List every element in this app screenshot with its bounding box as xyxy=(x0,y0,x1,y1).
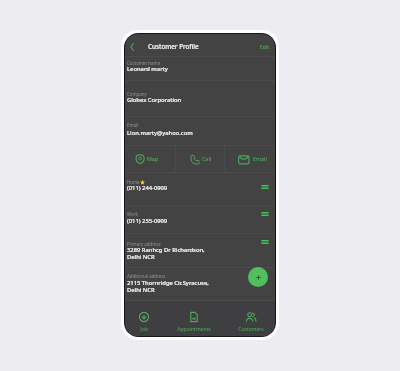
staticText: Additional address xyxy=(127,273,166,279)
staticText: Work xyxy=(127,211,138,217)
button[interactable]: Customers xyxy=(233,304,269,332)
staticText: (011) 244-0909 xyxy=(127,184,168,192)
staticText: Company xyxy=(127,91,147,97)
staticText: Customer name xyxy=(127,60,161,66)
staticText: 2115 Thornridge Cir.Syracuse, xyxy=(127,279,209,287)
staticText: Delhi NCR xyxy=(127,286,155,294)
staticText: Lion.marty@yahoo.com xyxy=(127,129,193,137)
button[interactable]: Appointments xyxy=(176,304,212,332)
staticText: Email xyxy=(253,155,267,162)
staticText: Home xyxy=(127,179,140,185)
staticText: (011) 255-0909 xyxy=(127,217,168,225)
staticText: Edit xyxy=(260,44,270,51)
staticText: Call xyxy=(202,155,212,162)
staticText: Leonard marty xyxy=(127,65,168,73)
staticText: Globex Corporation xyxy=(127,96,182,104)
button[interactable]: Edit xyxy=(254,39,275,56)
button[interactable]: Call xyxy=(175,145,225,173)
button[interactable]: Email xyxy=(224,145,274,173)
staticText: 3289 Ranhcg Dr Richardson, xyxy=(127,246,205,254)
button[interactable]: Reorder xyxy=(260,208,272,219)
staticText: Map xyxy=(147,155,159,162)
staticText: Primary address xyxy=(127,241,161,247)
button[interactable]: Reorder xyxy=(260,181,272,192)
staticText: Delhi NCR xyxy=(127,253,155,261)
button[interactable]: Job xyxy=(126,304,162,332)
staticText: Email xyxy=(127,122,139,128)
button[interactable]: Back xyxy=(125,40,139,54)
staticText: Customers xyxy=(233,326,269,333)
button[interactable]: Reorder xyxy=(260,236,272,247)
staticText: Appointments xyxy=(176,326,212,333)
staticText: Customer Profile xyxy=(148,42,199,51)
button[interactable]: Add xyxy=(248,267,268,287)
button[interactable]: Map xyxy=(125,145,175,173)
staticText: Job xyxy=(126,326,162,333)
